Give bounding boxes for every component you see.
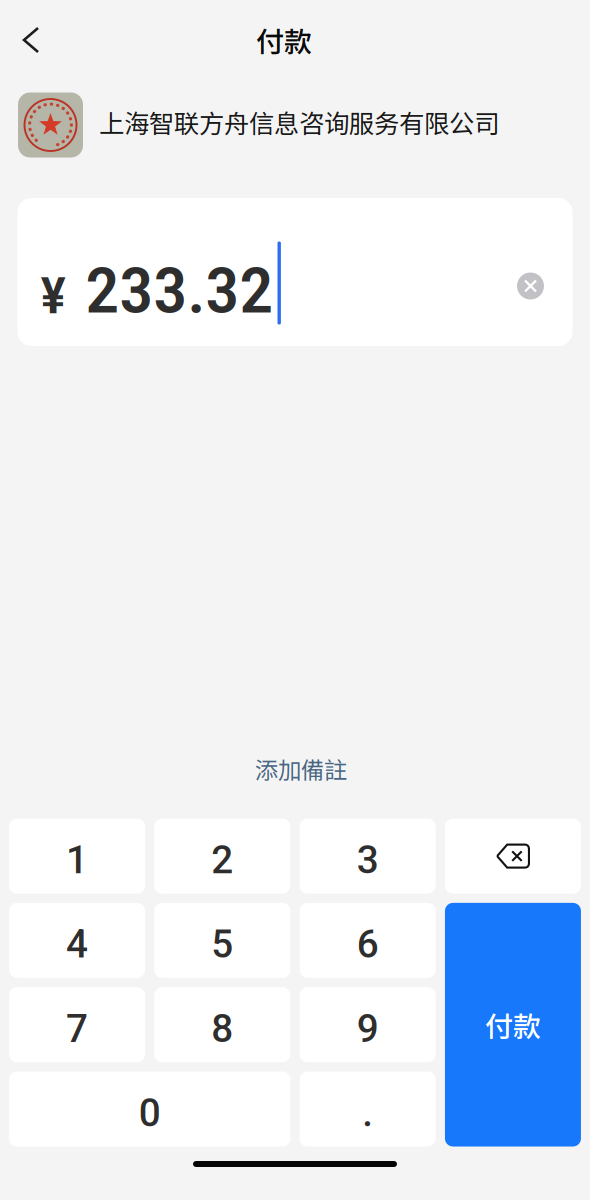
staticText: 4	[66, 922, 88, 967]
button[interactable]: 2	[154, 819, 290, 894]
button[interactable]: Delete	[445, 819, 581, 894]
button[interactable]: 0	[9, 1071, 290, 1146]
staticText: 付款	[485, 1004, 541, 1045]
staticText: 付款	[256, 20, 312, 60]
button[interactable]: 4	[9, 903, 145, 978]
staticText: 0	[139, 1090, 161, 1136]
button[interactable]: 付款	[445, 903, 581, 1146]
button[interactable]: 8	[154, 987, 290, 1062]
staticText: 3	[357, 837, 379, 883]
staticText: 7	[66, 1006, 88, 1051]
button[interactable]: 5	[154, 903, 290, 978]
staticText: 9	[357, 1006, 379, 1051]
button[interactable]: 添加備註	[196, 747, 406, 791]
staticText: 添加備註	[255, 752, 347, 785]
button[interactable]: 6	[300, 903, 436, 978]
staticText: ¥	[40, 266, 65, 326]
button[interactable]: 7	[9, 987, 145, 1062]
button[interactable]: .	[300, 1071, 436, 1146]
button[interactable]: 9	[300, 987, 436, 1062]
staticText: 8	[211, 1006, 233, 1051]
staticText: 1	[66, 837, 88, 883]
button[interactable]: 3	[300, 819, 436, 894]
staticText: .	[362, 1090, 373, 1136]
staticText: 5	[211, 922, 233, 967]
staticText: 2	[211, 837, 233, 883]
staticText: 233.32	[85, 254, 273, 328]
staticText: 上海智联方舟信息咨询服务有限公司	[99, 104, 499, 140]
staticText: 6	[357, 922, 379, 967]
button[interactable]: Back	[0, 12, 56, 68]
button[interactable]: Clear amount	[507, 263, 553, 309]
button[interactable]: 1	[9, 819, 145, 894]
